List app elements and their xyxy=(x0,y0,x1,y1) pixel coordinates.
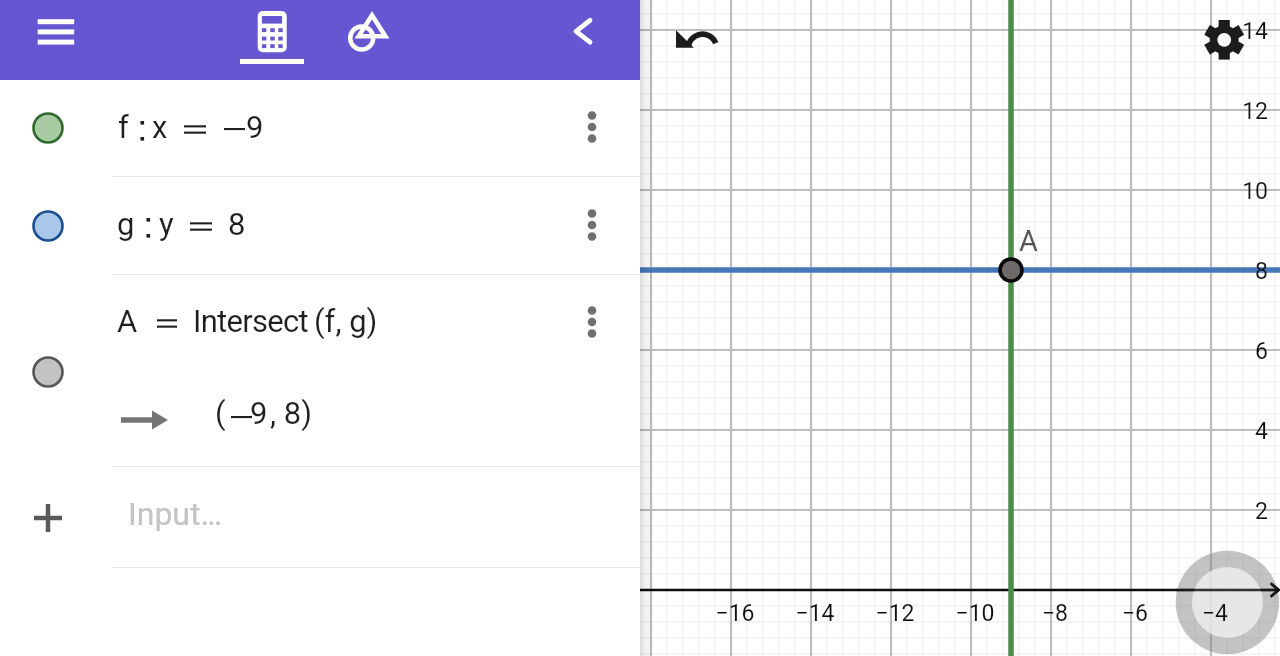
staticText: g xyxy=(117,206,135,242)
button[interactable]: Geometry xyxy=(340,6,394,60)
staticText: 2 xyxy=(1188,498,1268,525)
staticText: Input… xyxy=(128,495,222,533)
button[interactable]: Back xyxy=(556,7,604,55)
staticText: A xyxy=(117,303,138,339)
staticText: 10 xyxy=(1188,178,1268,205)
staticText: y xyxy=(159,206,174,242)
staticText: , 8) xyxy=(270,395,313,431)
button[interactable]: Input… xyxy=(112,467,640,567)
button[interactable]: f xyxy=(112,80,568,176)
button[interactable]: Toggle f xyxy=(32,112,64,144)
staticText: 4 xyxy=(1188,418,1268,445)
staticText: 12 xyxy=(1188,98,1268,125)
button[interactable]: More options xyxy=(568,103,616,151)
staticText: −12 xyxy=(855,600,935,627)
button[interactable]: A xyxy=(112,275,568,466)
staticText: ( xyxy=(215,395,226,431)
staticText: 8 xyxy=(228,206,246,242)
button[interactable]: Toggle A xyxy=(32,356,64,388)
button[interactable]: g xyxy=(112,177,568,274)
staticText: 8 xyxy=(1188,258,1268,285)
button[interactable]: Add input xyxy=(24,494,72,542)
button[interactable]: Undo xyxy=(668,12,724,68)
staticText: Intersect xyxy=(193,303,308,339)
staticText: (f, g) xyxy=(314,303,378,339)
staticText: 14 xyxy=(1188,18,1268,45)
staticText: −4 xyxy=(1175,600,1255,627)
staticText: f xyxy=(118,109,129,145)
staticText: −8 xyxy=(1015,600,1095,627)
staticText: 9 xyxy=(250,395,268,431)
button[interactable]: Graphing Calculator xyxy=(240,4,304,60)
button[interactable]: More options xyxy=(568,298,616,346)
staticText: A xyxy=(1019,224,1038,258)
button[interactable]: Toggle g xyxy=(32,210,64,242)
button[interactable]: Settings xyxy=(1198,14,1250,66)
staticText: x xyxy=(152,109,168,145)
button[interactable]: Menu xyxy=(18,6,74,58)
staticText: −6 xyxy=(1095,600,1175,627)
staticText: 6 xyxy=(1188,338,1268,365)
staticText: −14 xyxy=(775,600,855,627)
button[interactable]: More options xyxy=(568,201,616,249)
staticText: 9 xyxy=(246,109,264,145)
staticText: −10 xyxy=(935,600,1015,627)
staticText: −16 xyxy=(695,600,775,627)
